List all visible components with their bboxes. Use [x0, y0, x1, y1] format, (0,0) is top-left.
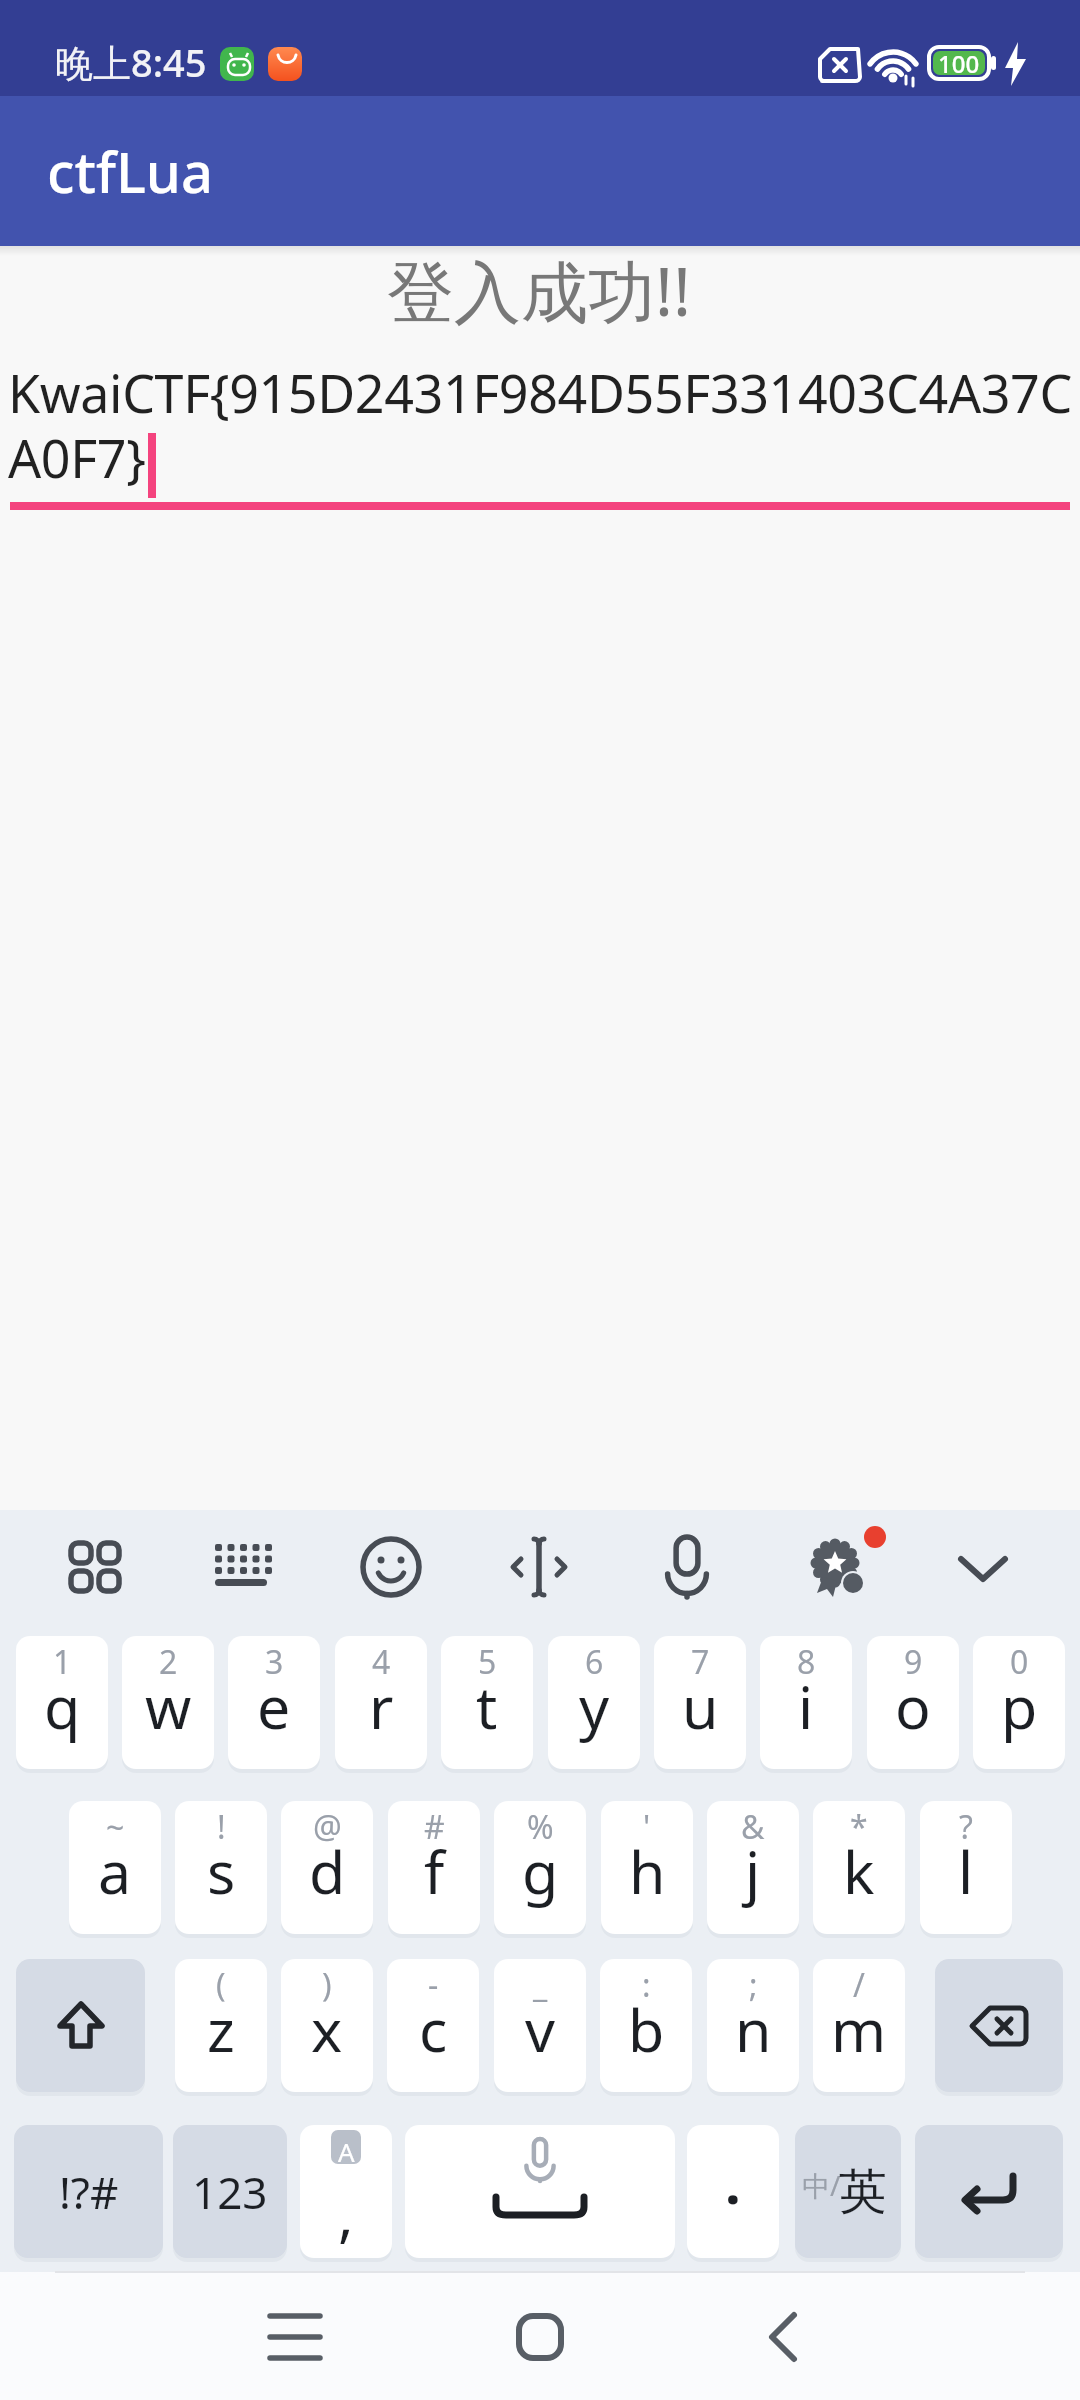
button[interactable]: 9 — [867, 1636, 959, 1769]
staticText: & — [741, 1805, 765, 1849]
staticText: @ — [313, 1805, 342, 1849]
button[interactable]: !?# — [14, 2125, 163, 2258]
button[interactable]: 3 — [228, 1636, 320, 1769]
staticText: c — [419, 1989, 448, 2069]
staticText: u — [682, 1666, 719, 1746]
staticText: 英 — [839, 2162, 887, 2222]
staticText: q — [44, 1666, 81, 1746]
staticText: / — [853, 1963, 865, 2007]
button[interactable]: * — [813, 1801, 905, 1934]
button[interactable] — [405, 2125, 675, 2258]
staticText: 登入成功!! — [387, 244, 692, 334]
staticText: n — [735, 1989, 772, 2069]
staticText: g — [522, 1831, 559, 1911]
staticText: ? — [959, 1805, 973, 1849]
button[interactable] — [768, 2312, 798, 2362]
button[interactable]: : — [600, 1959, 692, 2092]
button[interactable]: ? — [920, 1801, 1012, 1934]
button[interactable]: 中/ — [795, 2125, 901, 2258]
staticText: v — [525, 1989, 555, 2069]
button[interactable] — [507, 1535, 571, 1599]
button[interactable]: @ — [281, 1801, 373, 1934]
staticText: p — [1001, 1666, 1038, 1746]
staticText: 3 — [265, 1640, 284, 1684]
staticText: 晚上8:45 — [55, 36, 207, 88]
button[interactable] — [270, 2313, 320, 2361]
staticText: - — [428, 1963, 439, 2007]
staticText: s — [207, 1831, 236, 1911]
staticText: ; — [749, 1963, 758, 2007]
staticText: k — [843, 1831, 875, 1911]
button[interactable]: # — [388, 1801, 480, 1934]
button[interactable]: & — [707, 1801, 799, 1934]
staticText: ( — [216, 1963, 226, 2007]
staticText: l — [958, 1831, 974, 1911]
staticText: ) — [322, 1963, 332, 2007]
button[interactable]: / — [813, 1959, 905, 2092]
staticText: z — [207, 1989, 235, 2069]
staticText: KwaiCTF{915D2431F984D55F331403C4A37C — [8, 357, 1072, 428]
button[interactable]: A — [300, 2125, 392, 2258]
staticText: % — [527, 1805, 554, 1849]
button[interactable]: 5 — [441, 1636, 533, 1769]
staticText: 123 — [192, 2162, 268, 2222]
staticText: ctfLua — [47, 133, 213, 209]
staticText: : — [642, 1963, 651, 2007]
staticText: w — [145, 1666, 192, 1746]
staticText: ~ — [106, 1805, 125, 1849]
staticText: A — [338, 2134, 355, 2169]
staticText: # — [424, 1805, 445, 1849]
button[interactable] — [213, 1540, 273, 1594]
button[interactable] — [951, 1535, 1015, 1599]
staticText: j — [745, 1831, 761, 1911]
staticText: i — [798, 1666, 814, 1746]
staticText: 4 — [372, 1640, 391, 1684]
staticText: d — [309, 1831, 346, 1911]
staticText: f — [424, 1831, 445, 1911]
staticText: a — [98, 1831, 132, 1911]
button[interactable]: 123 — [173, 2125, 287, 2258]
button[interactable] — [16, 1959, 145, 2092]
staticText: m — [831, 1989, 887, 2069]
staticText: * — [850, 1805, 868, 1849]
button[interactable]: 6 — [548, 1636, 640, 1769]
button[interactable]: 2 — [122, 1636, 214, 1769]
staticText: 5 — [478, 1640, 497, 1684]
button[interactable]: 0 — [973, 1636, 1065, 1769]
button[interactable]: _ — [494, 1959, 586, 2092]
staticText: . — [725, 2144, 741, 2220]
button[interactable]: ! — [175, 1801, 267, 1934]
staticText: 8 — [797, 1640, 816, 1684]
button[interactable] — [655, 1535, 719, 1599]
button[interactable]: ( — [175, 1959, 267, 2092]
button[interactable] — [803, 1535, 867, 1599]
staticText: b — [628, 1989, 665, 2069]
staticText: t — [476, 1666, 498, 1746]
button[interactable] — [516, 2313, 564, 2361]
button[interactable]: 1 — [16, 1636, 108, 1769]
button[interactable]: ~ — [69, 1801, 161, 1934]
button[interactable]: 7 — [654, 1636, 746, 1769]
staticText: A0F7} — [8, 422, 146, 493]
staticText: 6 — [585, 1640, 604, 1684]
staticText: 100 — [938, 47, 980, 79]
button[interactable]: - — [387, 1959, 479, 2092]
button[interactable]: 8 — [760, 1636, 852, 1769]
button[interactable]: ' — [601, 1801, 693, 1934]
button[interactable]: % — [494, 1801, 586, 1934]
staticText: , — [338, 2174, 354, 2253]
button[interactable]: ; — [707, 1959, 799, 2092]
button[interactable] — [0, 350, 1080, 512]
staticText: 1 — [53, 1640, 72, 1684]
button[interactable]: . — [687, 2125, 779, 2258]
button[interactable] — [68, 1540, 122, 1594]
staticText: e — [257, 1666, 291, 1746]
button[interactable]: ) — [281, 1959, 373, 2092]
button[interactable] — [935, 1959, 1063, 2092]
button[interactable] — [359, 1535, 423, 1599]
button[interactable] — [915, 2125, 1063, 2258]
staticText: !?# — [59, 2162, 119, 2222]
staticText: 0 — [1010, 1640, 1029, 1684]
staticText: 9 — [904, 1640, 923, 1684]
button[interactable]: 4 — [335, 1636, 427, 1769]
